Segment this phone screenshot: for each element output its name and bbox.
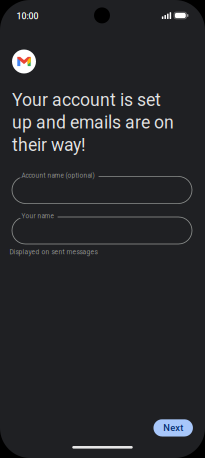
staticText: 10:00 xyxy=(16,11,38,21)
staticText: Displayed on sent messages xyxy=(10,248,98,256)
staticText: Next xyxy=(163,422,183,433)
button[interactable]: Account name (optional) xyxy=(12,176,192,203)
button[interactable]: Next xyxy=(153,419,193,436)
staticText: Your name xyxy=(22,212,54,220)
staticText: Account name (optional) xyxy=(22,172,95,179)
button[interactable]: Your name xyxy=(12,217,192,244)
staticText: Your account is set up and emails are on… xyxy=(12,90,174,155)
